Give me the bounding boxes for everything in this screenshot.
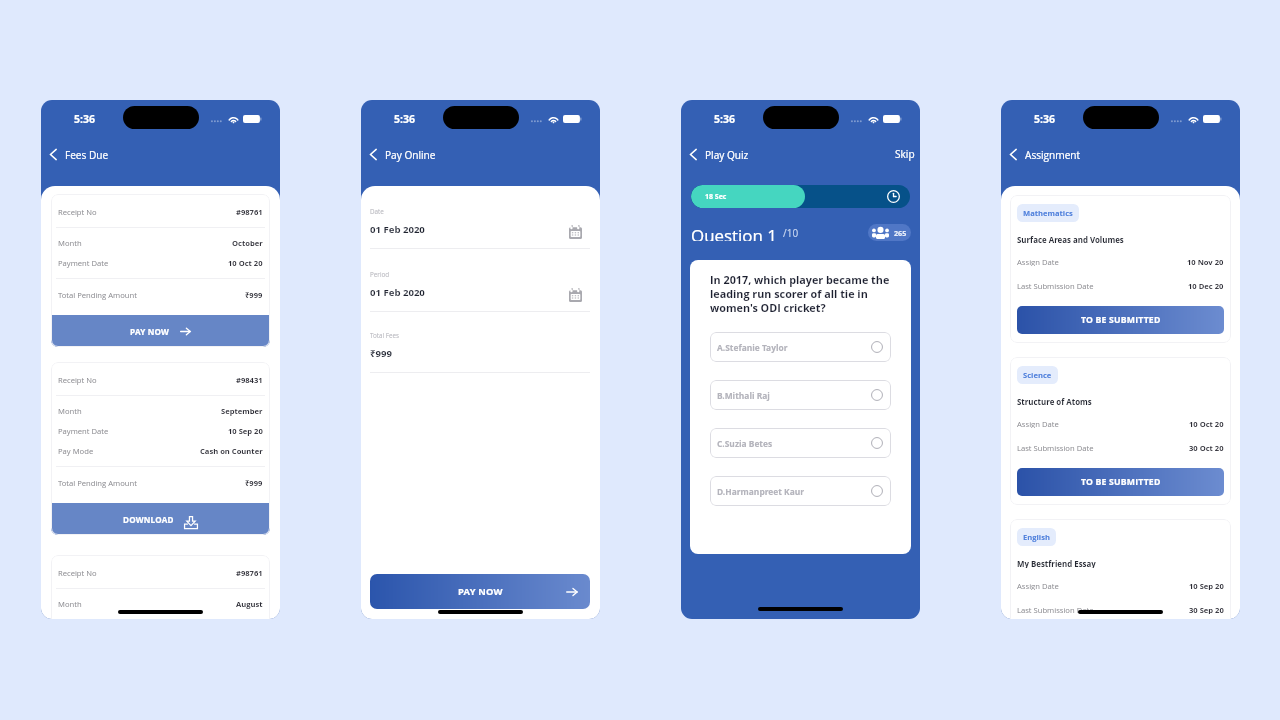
staticText: ₹999: [245, 290, 263, 300]
staticText: Fees Due: [65, 148, 109, 162]
staticText: Assign Date: [1017, 257, 1059, 266]
staticText: My Bestfriend Essay: [1017, 559, 1096, 568]
staticText: #98761: [236, 207, 263, 217]
staticText: Last Submission Date: [1017, 443, 1094, 452]
staticText: 30 Sep 20: [1189, 605, 1224, 614]
button[interactable]: TO BE SUBMITTED: [1017, 306, 1224, 334]
staticText: Pay Mode: [58, 446, 94, 456]
button[interactable]: 265: [868, 224, 911, 241]
staticText: Science: [1023, 370, 1052, 380]
staticText: September: [221, 406, 263, 416]
button[interactable]: Pay Online: [361, 144, 442, 165]
staticText: D.Harmanpreet Kaur: [717, 486, 805, 497]
staticText: 5:36: [1034, 112, 1055, 126]
staticText: Assign Date: [1017, 581, 1059, 590]
staticText: Play Quiz: [705, 148, 749, 162]
staticText: Receipt No: [58, 568, 97, 578]
staticText: ₹999: [245, 478, 263, 488]
staticText: Period: [370, 270, 390, 277]
button[interactable]: PAY NOW: [51, 315, 270, 347]
staticText: Payment Date: [58, 426, 109, 436]
staticText: Total Pending Amount: [58, 290, 137, 300]
button[interactable]: DOWNLOAD: [51, 503, 270, 535]
button[interactable]: Assignment: [1001, 144, 1087, 165]
staticText: Question 1: [691, 224, 777, 241]
staticText: 01 Feb 2020: [370, 286, 425, 299]
staticText: 5:36: [714, 112, 735, 126]
staticText: Last Submission Date: [1017, 281, 1094, 290]
staticText: Skip: [895, 147, 915, 161]
staticText: #98431: [236, 375, 263, 385]
staticText: B.Mithali Raj: [717, 390, 770, 401]
staticText: Surface Areas and Volumes: [1017, 235, 1124, 244]
staticText: 10 Sep 20: [228, 426, 263, 436]
staticText: TO BE SUBMITTED: [1081, 314, 1161, 326]
button[interactable]: A.Stefanie Taylor: [710, 332, 891, 362]
staticText: 30 Oct 20: [1189, 443, 1224, 452]
staticText: 10 Oct 20: [1189, 419, 1224, 428]
staticText: October: [232, 238, 263, 248]
staticText: Pay Online: [385, 148, 436, 162]
button[interactable]: B.Mithali Raj: [710, 380, 891, 410]
staticText: Total Pending Amount: [58, 478, 137, 488]
staticText: Assign Date: [1017, 419, 1059, 428]
staticText: Cash on Counter: [200, 446, 263, 456]
staticText: PAY NOW: [458, 585, 503, 598]
button[interactable]: PAY NOW: [370, 574, 590, 609]
staticText: 10 Oct 20: [228, 258, 263, 268]
staticText: Last Submission Date: [1017, 605, 1094, 614]
staticText: 265: [894, 228, 907, 238]
staticText: 10 Nov 20: [1187, 257, 1224, 266]
staticText: English: [1023, 532, 1050, 542]
staticText: Month: [58, 238, 82, 248]
staticText: DOWNLOAD: [123, 514, 174, 525]
staticText: PAY NOW: [130, 326, 170, 337]
staticText: 18 Sec: [705, 192, 727, 202]
other: Timer: [887, 190, 900, 203]
staticText: 5:36: [74, 112, 95, 126]
staticText: August: [236, 599, 263, 609]
staticText: Payment Date: [58, 258, 109, 268]
staticText: Assignment: [1025, 148, 1081, 162]
staticText: Receipt No: [58, 375, 97, 385]
staticText: Total Fees: [370, 331, 400, 338]
button[interactable]: TO BE SUBMITTED: [1017, 468, 1224, 496]
staticText: A.Stefanie Taylor: [717, 342, 788, 353]
staticText: TO BE SUBMITTED: [1081, 476, 1161, 488]
button[interactable]: Pick date: [569, 222, 590, 236]
staticText: Date: [370, 207, 384, 214]
staticText: ₹999: [370, 347, 392, 360]
staticText: C.Suzia Betes: [717, 438, 773, 449]
staticText: In 2017, which player became the leading…: [710, 272, 891, 315]
staticText: 5:36: [394, 112, 415, 126]
staticText: #98761: [236, 568, 263, 578]
staticText: /10: [783, 226, 799, 240]
staticText: 10 Sep 20: [1189, 581, 1224, 590]
button[interactable]: Skip: [881, 143, 920, 165]
staticText: Month: [58, 406, 82, 416]
staticText: 01 Feb 2020: [370, 223, 425, 236]
button[interactable]: D.Harmanpreet Kaur: [710, 476, 891, 506]
button[interactable]: C.Suzia Betes: [710, 428, 891, 458]
staticText: Structure of Atoms: [1017, 397, 1092, 406]
staticText: 10 Dec 20: [1188, 281, 1224, 290]
button[interactable]: Fees Due: [41, 144, 115, 165]
staticText: Mathematics: [1023, 208, 1073, 218]
staticText: Month: [58, 599, 82, 609]
button[interactable]: Play Quiz: [681, 144, 755, 165]
button[interactable]: Pick date: [569, 285, 590, 299]
staticText: Receipt No: [58, 207, 97, 217]
